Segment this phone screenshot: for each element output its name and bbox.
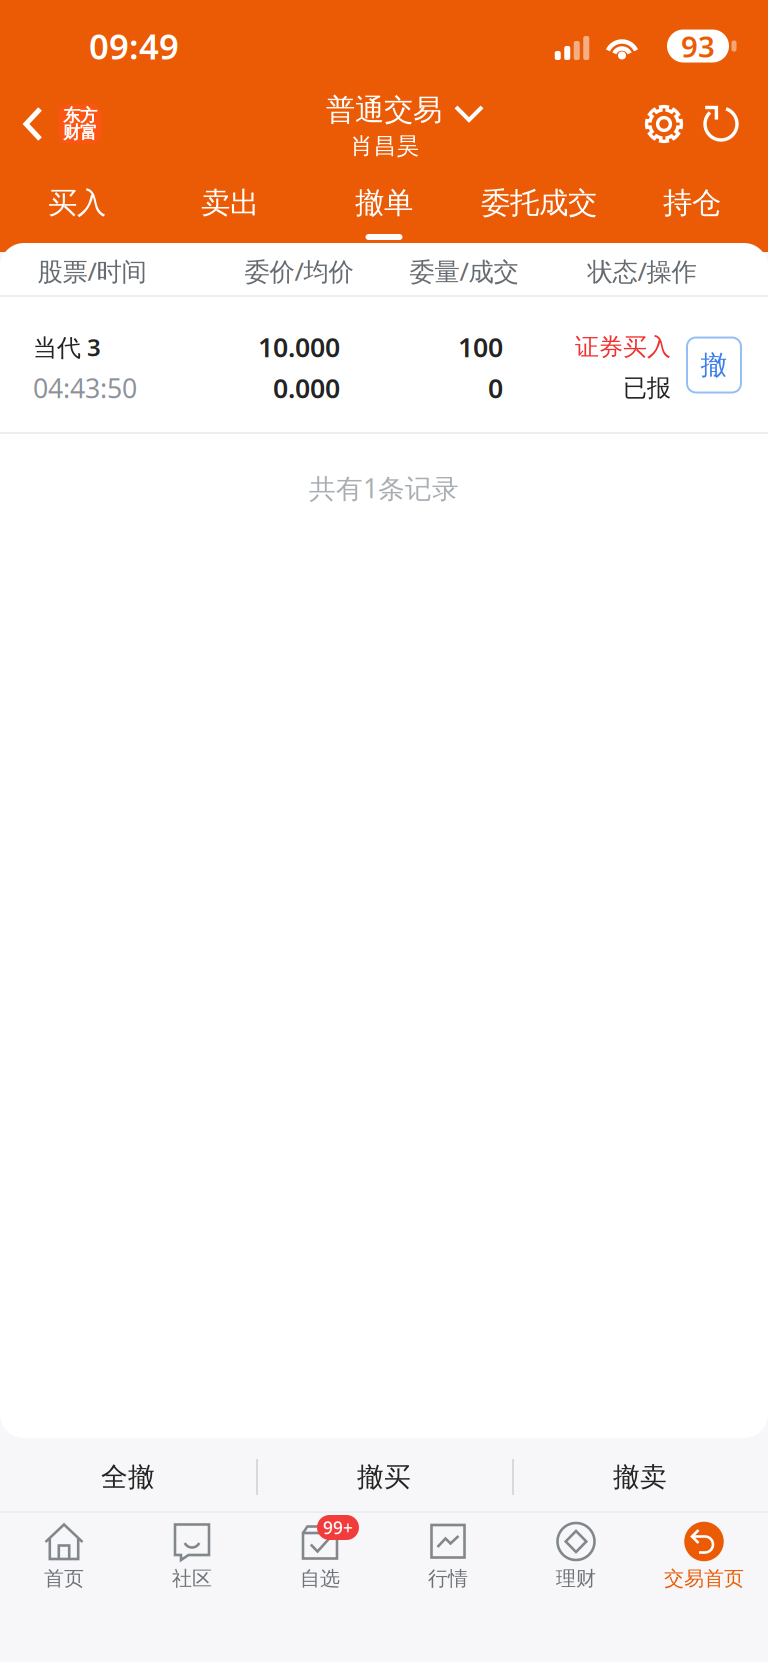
button[interactable]: 全撤 — [0, 1438, 256, 1516]
staticText: 财富 — [63, 122, 97, 143]
staticText: 100 — [458, 329, 503, 365]
staticText: 状态/操作 — [587, 254, 696, 288]
button[interactable]: 自选 — [256, 1511, 384, 1611]
button[interactable]: 社区 — [128, 1511, 256, 1611]
button[interactable]: 首页 — [0, 1511, 128, 1611]
button[interactable]: 持仓 — [592, 179, 768, 251]
staticText: 证券买入 — [575, 332, 671, 362]
staticText: 当代 3 — [33, 331, 101, 363]
button[interactable]: 撤卖 — [513, 1438, 767, 1516]
staticText: 0.000 — [273, 370, 340, 406]
button[interactable]: 撤单 — [284, 179, 484, 251]
button[interactable]: 买入 — [0, 179, 177, 251]
button[interactable]: 行情 — [384, 1511, 512, 1611]
staticText: 委量/成交 — [409, 254, 518, 288]
staticText: 普通交易 — [326, 92, 442, 128]
staticText: 股票/时间 — [37, 254, 146, 288]
staticText: 0 — [488, 370, 503, 406]
staticText: 首页 — [44, 1566, 84, 1591]
staticText: 已报 — [623, 373, 671, 403]
staticText: 撤卖 — [613, 1461, 667, 1493]
staticText: 10.000 — [258, 329, 340, 365]
staticText: 撤 — [700, 349, 727, 381]
staticText: 持仓 — [663, 185, 721, 221]
staticText: 肖昌昊 — [350, 132, 419, 160]
staticText: 共有1条记录 — [309, 470, 459, 506]
button[interactable]: 撤 — [687, 337, 741, 392]
button[interactable]: 理财 — [512, 1511, 640, 1611]
button[interactable]: 卖出 — [130, 179, 330, 251]
staticText: 93 — [681, 26, 715, 65]
staticText: 理财 — [556, 1566, 596, 1591]
button[interactable]: 返回 — [12, 86, 128, 162]
button[interactable]: 撤买 — [257, 1438, 511, 1516]
staticText: 社区 — [172, 1566, 212, 1591]
button[interactable]: 刷新 — [701, 104, 741, 144]
staticText: 委托成交 — [481, 185, 597, 221]
button[interactable]: 普通交易 — [277, 87, 507, 133]
staticText: 全撤 — [101, 1461, 155, 1493]
button[interactable]: 委托成交 — [439, 179, 639, 251]
staticText: 委价/均价 — [244, 254, 353, 288]
staticText: 撤买 — [357, 1461, 411, 1493]
staticText: 自选 — [300, 1566, 340, 1591]
staticText: 撤单 — [355, 185, 413, 221]
staticText: 09:49 — [89, 23, 179, 69]
staticText: 99+ — [323, 1516, 353, 1539]
staticText: 04:43:50 — [33, 370, 137, 406]
staticText: 行情 — [428, 1566, 468, 1591]
button[interactable]: 交易首页 — [640, 1511, 768, 1611]
staticText: 卖出 — [201, 185, 259, 221]
staticText: 东方 — [63, 105, 97, 126]
staticText: 交易首页 — [664, 1566, 744, 1591]
button[interactable]: 设置 — [644, 104, 684, 144]
staticText: 买入 — [48, 185, 106, 221]
